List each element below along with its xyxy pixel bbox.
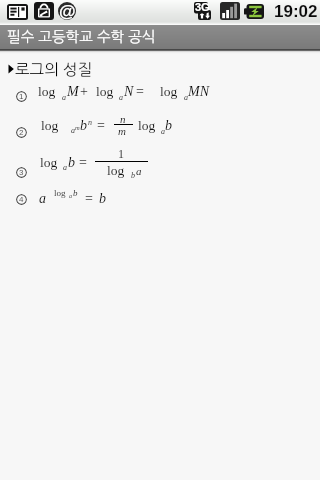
staticText: b <box>68 155 75 171</box>
staticText: a <box>161 127 165 136</box>
staticText: a <box>184 93 188 102</box>
staticText: log <box>138 118 156 133</box>
staticText: 1 <box>118 147 124 160</box>
staticText: MN <box>188 84 209 100</box>
staticText: a <box>62 93 66 102</box>
staticText: = <box>79 155 87 171</box>
staticText: m <box>118 125 126 137</box>
staticText: + <box>80 84 88 100</box>
staticText: 19:02 <box>274 2 318 21</box>
staticText: n <box>88 118 92 127</box>
button[interactable]: 1 <box>16 91 27 102</box>
staticText: M <box>67 84 79 100</box>
staticText: log <box>38 84 56 99</box>
staticText: log <box>160 84 178 99</box>
staticText: a <box>69 193 72 200</box>
staticText: b <box>73 188 78 198</box>
staticText: N <box>124 84 134 100</box>
staticText: log <box>107 163 125 178</box>
button[interactable]: 2 <box>16 127 27 138</box>
staticText: a <box>136 165 142 177</box>
button[interactable]: 3 <box>16 167 27 178</box>
staticText: = <box>85 191 93 207</box>
staticText: b <box>165 118 172 134</box>
staticText: 4 <box>19 195 24 204</box>
staticText: 로그의 성질 <box>15 62 93 77</box>
staticText: @ <box>59 2 76 20</box>
button[interactable]: 4 <box>16 194 27 205</box>
staticText: 2 <box>19 128 24 137</box>
staticText: b <box>99 191 106 207</box>
staticText: log <box>40 155 58 170</box>
staticText: log <box>96 84 114 99</box>
button[interactable]: 필수 고등학교 수학 공식 <box>0 25 320 49</box>
button[interactable]: 로그의 성질 <box>7 61 93 77</box>
staticText: = <box>97 118 105 134</box>
staticText: log <box>54 188 66 198</box>
staticText: a <box>71 126 75 135</box>
staticText: 3G <box>195 1 210 13</box>
staticText: 3 <box>19 168 24 177</box>
staticText: log <box>41 118 59 133</box>
staticText: a <box>119 93 123 102</box>
staticText: = <box>136 84 144 100</box>
staticText: b <box>131 171 135 180</box>
staticText: a <box>39 191 46 207</box>
staticText: a <box>63 163 67 172</box>
staticText: b <box>80 118 87 134</box>
staticText: 필수 고등학교 수학 공식 <box>7 30 156 44</box>
staticText: m <box>75 124 80 131</box>
staticText: 1 <box>19 92 24 101</box>
staticText: n <box>120 113 126 125</box>
